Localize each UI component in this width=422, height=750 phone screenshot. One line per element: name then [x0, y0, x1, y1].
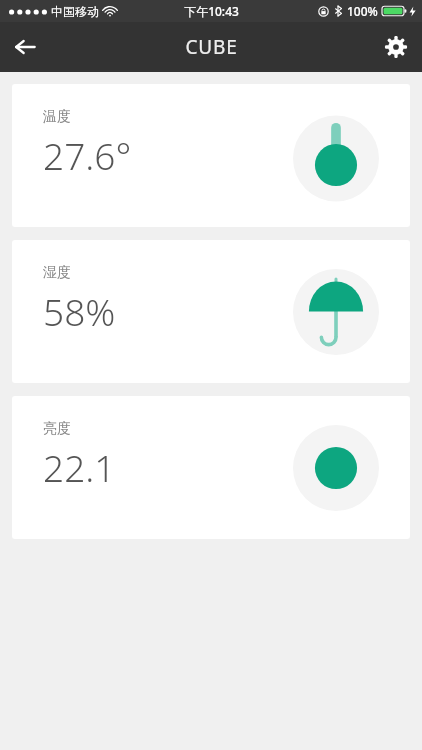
staticText: 27.6° — [43, 130, 132, 180]
staticText: 中国移动 — [51, 4, 99, 19]
staticText: 亮度 — [43, 420, 71, 438]
staticText: 100% — [347, 3, 378, 19]
staticText: 58% — [43, 286, 116, 336]
button[interactable]: 温度 — [12, 84, 410, 227]
staticText: CUBE — [185, 34, 238, 60]
button[interactable]: 亮度 — [12, 396, 410, 539]
button[interactable]: Settings — [370, 22, 422, 72]
button[interactable]: 湿度 — [12, 240, 410, 383]
staticText: 温度 — [43, 108, 71, 126]
button[interactable]: Back — [0, 22, 50, 72]
staticText: 湿度 — [43, 264, 71, 282]
staticText: 下午10:43 — [184, 3, 239, 19]
staticText: 22.1 — [43, 442, 116, 492]
